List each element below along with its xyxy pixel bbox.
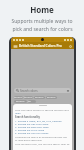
staticText: BS 381C: [35, 96, 44, 99]
button[interactable]: Settings: [68, 44, 72, 48]
button[interactable]: BS 381C: [46, 96, 57, 99]
button[interactable]: Complete the search by pressing the Ente…: [15, 135, 70, 138]
button[interactable]: 2. Provide the HEX color value: [15, 122, 70, 125]
button[interactable]: Click the Menu icon, you can pick search…: [15, 142, 70, 145]
button[interactable]: BS 381C: [24, 96, 33, 99]
button[interactable]: Click the Menu button to see the functio…: [15, 108, 70, 111]
button[interactable]: BS 381C: [28, 100, 36, 103]
staticText: Search colors: [20, 89, 38, 93]
staticText: Supports multiple ways to: [11, 18, 73, 25]
button[interactable]: BS 381C: [14, 100, 27, 103]
button[interactable]: 3. Provide the RGB color value: [15, 125, 70, 128]
button[interactable]: BS 381C: [34, 96, 45, 99]
button[interactable]: BS 381C: [14, 96, 23, 99]
button[interactable]: Search functionality: [15, 115, 70, 118]
button[interactable]: links.: [15, 111, 70, 114]
staticText: BS 381C: [24, 96, 33, 99]
button[interactable]: Open navigation menu: [13, 44, 17, 48]
staticText: British Standard Colors Pro: [19, 44, 62, 48]
staticText: BS 381C: [47, 96, 56, 99]
staticText: pick and search for colors: [12, 26, 73, 33]
button[interactable]: 4. Provide the CMYK value: [15, 128, 70, 131]
button[interactable]: Search colors: [14, 88, 71, 93]
staticText: Home: [30, 4, 54, 15]
staticText: BS 381C: [28, 100, 36, 103]
button[interactable]: 5. Provide the HSL/HSV values: [15, 131, 70, 134]
staticText: BS 381C: [14, 96, 23, 99]
button[interactable]: 1. Provide a Name, RAL, BS, NCS, Pantone: [15, 119, 70, 122]
staticText: BS 381C: [16, 100, 25, 103]
button[interactable]: or long-press searching.: [15, 138, 70, 141]
